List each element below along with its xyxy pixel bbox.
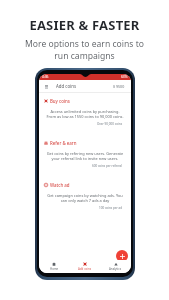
staticText: Watch ad	[50, 182, 70, 188]
other: Menu	[45, 85, 48, 88]
staticText: 100 coins per ad	[99, 206, 123, 210]
staticText: More options to earn coins to run campai…	[25, 38, 144, 62]
staticText: Add coins	[78, 267, 92, 271]
staticText: 63%	[121, 75, 128, 79]
staticText: Add coins	[56, 83, 77, 89]
staticText: Refer & earn	[50, 140, 77, 146]
staticText: $ 9500	[113, 84, 125, 89]
button[interactable]: Add	[116, 250, 128, 262]
staticText: Analytics	[109, 267, 122, 271]
button[interactable]: Analytics	[100, 261, 131, 272]
staticText: Access unlimited coins by purchasing. Fr…	[44, 109, 126, 119]
button[interactable]: Watch ad	[39, 177, 131, 219]
button[interactable]: Home	[39, 261, 69, 272]
button[interactable]: Buy coins	[39, 93, 131, 135]
staticText: Buy coins	[50, 98, 70, 104]
button[interactable]: Add coins	[69, 261, 100, 272]
staticText: Over 90,000 coins	[97, 122, 123, 126]
staticText: 600 coins per referral	[92, 164, 123, 168]
staticText: Get coins by refering new users. Generat…	[44, 151, 126, 161]
button[interactable]: Refer & earn	[39, 135, 131, 177]
staticText: Get campaign coins by watching ads. You …	[44, 193, 126, 203]
staticText: EASIER & FASTER	[29, 16, 140, 34]
staticText: 4:36	[42, 75, 49, 79]
staticText: Home	[50, 267, 59, 271]
